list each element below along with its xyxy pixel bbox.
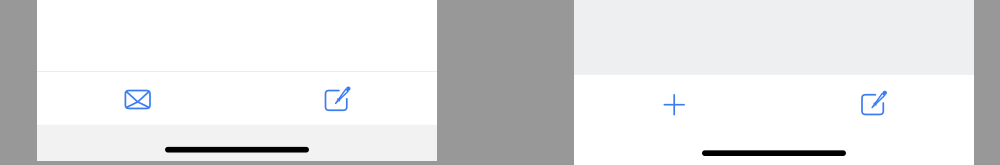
button[interactable]: Compose [237,72,437,125]
button[interactable]: Mailboxes [37,72,237,125]
button[interactable]: Compose [774,75,974,134]
button[interactable]: Add [574,75,774,134]
